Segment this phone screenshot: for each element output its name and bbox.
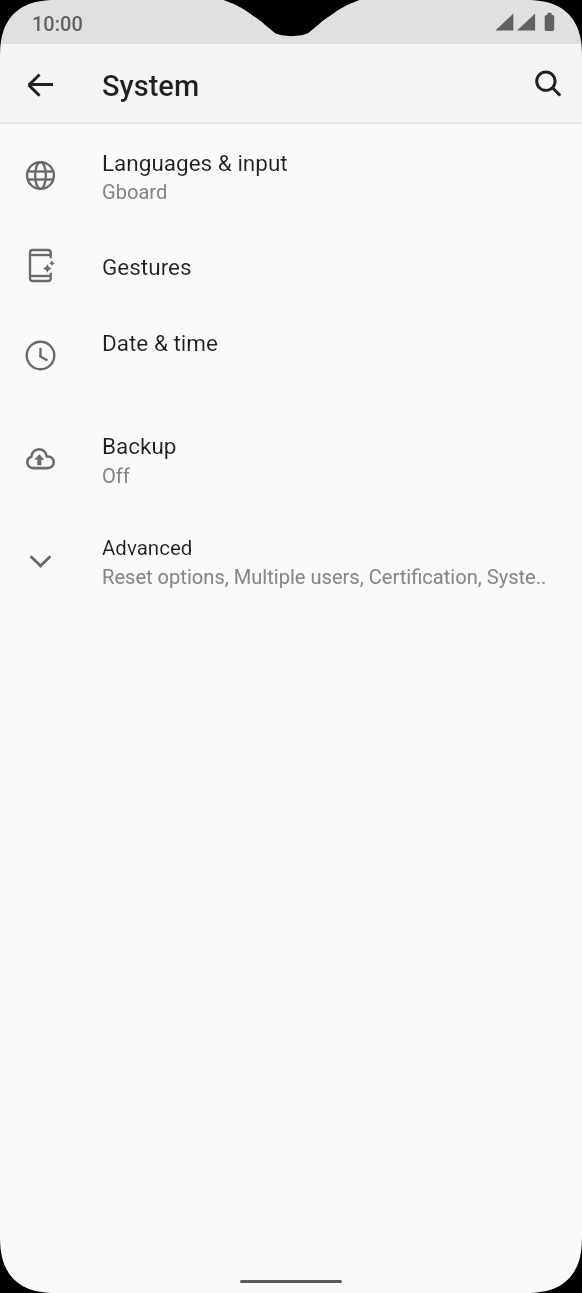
staticText: Off <box>102 464 130 488</box>
button[interactable]: Date & time <box>0 310 582 400</box>
staticText: 10:00 <box>32 12 83 35</box>
staticText: Advanced <box>102 536 193 560</box>
button[interactable]: Advanced <box>0 511 582 614</box>
staticText: Date & time <box>102 330 218 356</box>
staticText: Backup <box>102 433 177 459</box>
button[interactable]: Search <box>520 56 576 112</box>
button[interactable]: Languages & input <box>0 131 582 221</box>
staticText: System <box>102 69 200 103</box>
staticText: Reset options, Multiple users, Certifica… <box>102 565 547 589</box>
staticText: Gboard <box>102 180 168 204</box>
button[interactable]: Backup <box>0 400 582 511</box>
staticText: Gestures <box>102 254 192 280</box>
staticText: Languages & input <box>102 150 288 176</box>
button[interactable]: Back <box>13 56 69 112</box>
button[interactable]: Gestures <box>0 221 582 310</box>
